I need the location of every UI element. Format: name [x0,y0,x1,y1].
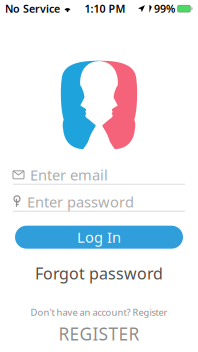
staticText: REGISTER [58,322,139,345]
staticText: Log In [77,227,121,247]
button[interactable]: Forgot password [0,263,198,284]
staticText: Don't have an account? Register [30,306,167,318]
button[interactable]: Log In [15,226,183,249]
staticText: 1:10 PM [84,2,125,16]
staticText: Enter password [27,192,134,212]
staticText: Forgot password [35,263,163,284]
staticText: 99% [154,2,175,16]
staticText: No Service [5,2,60,16]
staticText: Enter email [30,165,108,185]
button[interactable]: REGISTER [0,322,198,345]
button[interactable]: Don't have an account? Register [0,306,198,318]
